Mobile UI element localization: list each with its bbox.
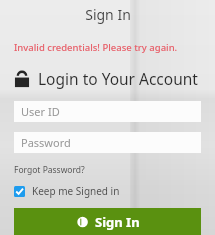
staticText: User ID xyxy=(21,104,60,119)
other: Sign In xyxy=(76,216,88,228)
staticText: Password xyxy=(21,135,71,150)
other: Secure xyxy=(14,70,30,88)
staticText: Sign In xyxy=(95,213,140,231)
staticText: Invalid credentials! Please try again. xyxy=(14,41,178,54)
button[interactable]: Keep me Signed in xyxy=(14,184,120,198)
button[interactable]: Password xyxy=(14,132,201,153)
staticText: Login to Your Account xyxy=(38,68,198,89)
button[interactable]: Forgot Password? xyxy=(14,164,85,176)
button[interactable]: Sign In xyxy=(14,208,201,235)
button[interactable]: User ID xyxy=(14,101,201,122)
staticText: Sign In xyxy=(85,5,131,24)
staticText: Forgot Password? xyxy=(14,164,85,176)
staticText: Keep me Signed in xyxy=(32,184,120,198)
